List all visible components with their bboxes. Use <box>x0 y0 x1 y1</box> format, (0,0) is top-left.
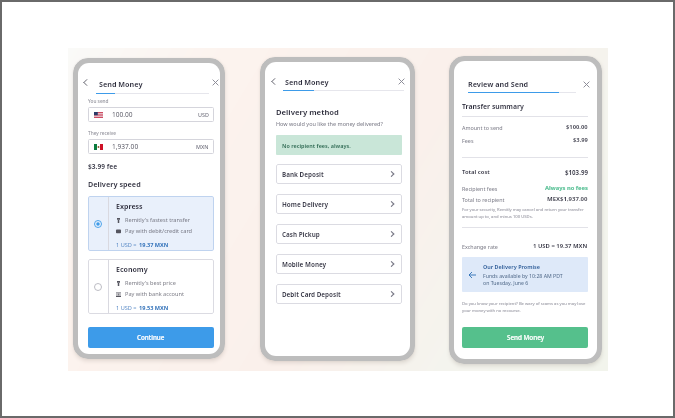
staticText: Exchange rate <box>462 243 498 250</box>
staticText: Remitly's best price <box>125 279 176 287</box>
staticText: Recipient fees <box>462 185 498 192</box>
button[interactable]: Continue <box>88 327 214 348</box>
staticText: 1,937.00 <box>112 142 139 151</box>
button[interactable]: Back <box>268 76 279 87</box>
button[interactable]: Debit Card Deposit <box>276 284 402 304</box>
staticText: Total to recipient <box>462 196 505 203</box>
button[interactable]: Express <box>88 196 214 251</box>
button[interactable]: Back <box>80 77 91 88</box>
button[interactable]: Close <box>581 79 592 90</box>
staticText: Remitly's fastest transfer <box>125 216 191 224</box>
staticText: Home Delivery <box>282 200 329 209</box>
staticText: USD <box>198 111 209 118</box>
staticText: No recipient fees, always. <box>282 142 351 149</box>
staticText: Delivery method <box>276 107 339 117</box>
staticText: Cash Pickup <box>282 230 320 239</box>
button[interactable]: Cash Pickup <box>276 224 402 244</box>
staticText: Pay with bank account <box>125 290 184 298</box>
button[interactable]: Close <box>396 76 407 87</box>
button[interactable]: Home Delivery <box>276 194 402 214</box>
staticText: 1 USD = 19.37 MXN <box>533 242 588 250</box>
staticText: Amount to send <box>462 124 503 131</box>
staticText: They receive <box>88 130 116 137</box>
button[interactable]: Economy <box>88 259 214 314</box>
button[interactable]: Mobile Money <box>276 254 402 274</box>
staticText: Economy <box>116 265 148 275</box>
staticText: 1 USD = <box>116 241 139 249</box>
staticText: MXN <box>196 143 209 150</box>
staticText: Debit Card Deposit <box>282 290 341 299</box>
staticText: Pay with debit/credit card <box>125 227 193 235</box>
staticText: Continue <box>137 333 165 342</box>
staticText: Funds available by 10:28 AM PDT on Tuesd… <box>483 272 563 287</box>
staticText: $103.99 <box>565 168 588 176</box>
staticText: 1 USD = <box>116 304 139 312</box>
staticText: For your security, Remitly may cancel an… <box>462 207 584 219</box>
staticText: Bank Deposit <box>282 170 324 179</box>
staticText: Total cost <box>462 168 490 176</box>
button[interactable]: 100.00 <box>88 107 214 122</box>
staticText: 100.00 <box>112 110 133 119</box>
staticText: Send Money <box>507 333 544 342</box>
button[interactable]: 1,937.00 <box>88 139 214 154</box>
staticText: 19.37 MXN <box>139 241 169 249</box>
staticText: Express <box>116 202 143 212</box>
staticText: $3.99 fee <box>88 162 118 171</box>
staticText: Transfer summary <box>462 102 524 111</box>
staticText: Fees <box>462 137 474 144</box>
staticText: Send Money <box>285 77 329 87</box>
staticText: How would you like the money delivered? <box>276 120 383 127</box>
staticText: 19.53 MXN <box>139 304 169 312</box>
staticText: $100.00 <box>566 123 588 131</box>
staticText: Do you know your recipient? Be wary of s… <box>462 301 588 313</box>
staticText: Always no fees <box>545 184 588 192</box>
staticText: You send <box>88 98 109 105</box>
staticText: Delivery speed <box>88 179 141 189</box>
staticText: $3.99 <box>573 136 588 144</box>
staticText: Our Delivery Promise <box>483 263 540 270</box>
staticText: Send Money <box>99 79 143 89</box>
button[interactable]: Send Money <box>462 327 588 348</box>
staticText: Mobile Money <box>282 260 327 269</box>
button[interactable]: Bank Deposit <box>276 164 402 184</box>
staticText: MEX$1,937.00 <box>547 195 588 203</box>
staticText: Review and Send <box>468 79 529 89</box>
button[interactable]: Close <box>210 77 220 88</box>
